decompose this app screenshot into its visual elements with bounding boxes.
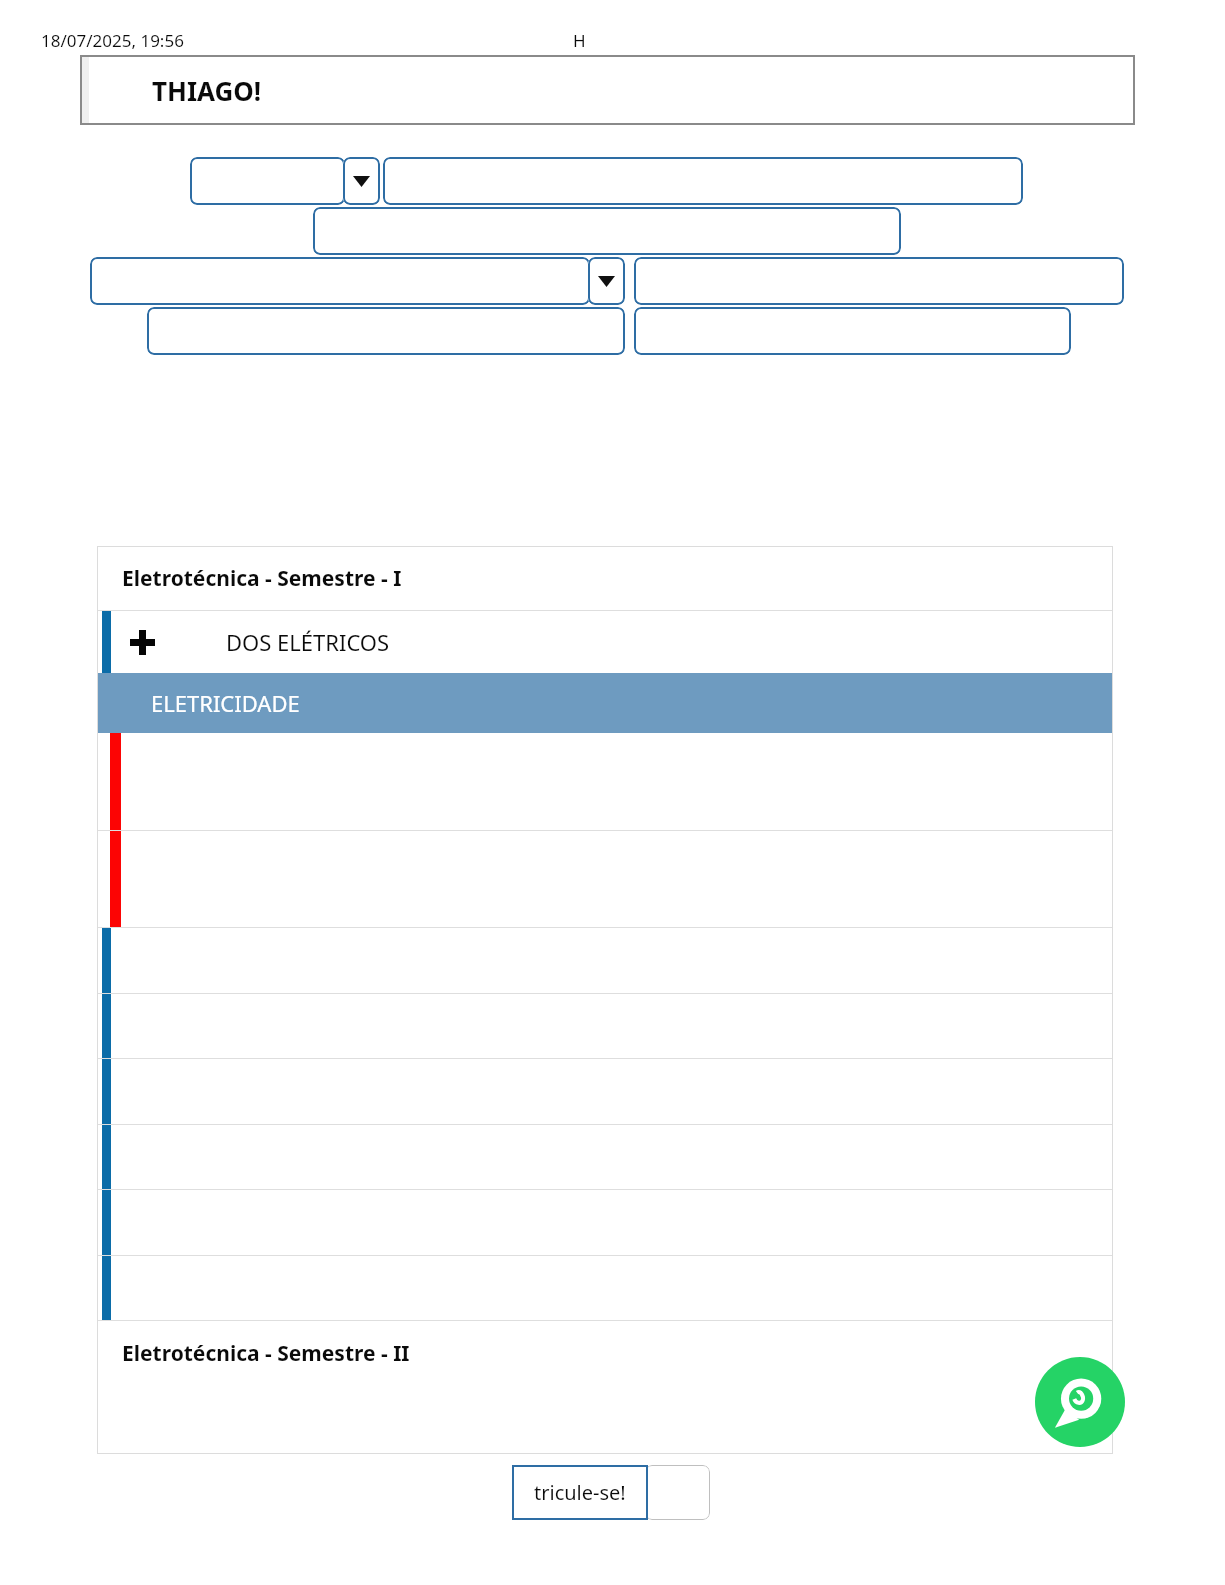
staticText: DOS ELÉTRICOS: [226, 627, 390, 657]
staticText: Eletrotécnica - Semestre - I: [122, 564, 402, 593]
button[interactable]: More options: [645, 1465, 710, 1520]
button[interactable]: [97, 831, 1113, 927]
button[interactable]: [97, 733, 1113, 830]
button[interactable]: Input field: [634, 307, 1071, 355]
button[interactable]: Eletrotécnica - Semestre - II: [97, 1321, 1113, 1385]
button[interactable]: WhatsApp: [1035, 1357, 1125, 1447]
button[interactable]: [97, 1125, 1113, 1189]
button[interactable]: THIAGO!: [80, 55, 1135, 125]
button[interactable]: ELETRICIDADE: [97, 673, 1113, 733]
button[interactable]: Input field: [147, 307, 625, 355]
staticText: tricule-se!: [534, 1479, 626, 1506]
staticText: THIAGO!: [152, 73, 262, 108]
button[interactable]: Input field: [313, 207, 901, 255]
button[interactable]: Dropdown: [190, 157, 380, 205]
staticText: 18/07/2025, 19:56: [41, 29, 184, 52]
button[interactable]: [97, 1059, 1113, 1124]
staticText: Eletrotécnica - Semestre - II: [122, 1339, 410, 1368]
button[interactable]: [97, 928, 1113, 993]
button[interactable]: Eletrotécnica - Semestre - I: [97, 546, 1113, 610]
button[interactable]: [97, 1190, 1113, 1255]
staticText: H: [573, 29, 586, 52]
button[interactable]: [97, 1256, 1113, 1320]
button[interactable]: Dropdown: [90, 257, 625, 305]
button[interactable]: Input field: [383, 157, 1023, 205]
button[interactable]: DOS ELÉTRICOS: [97, 611, 1113, 673]
button[interactable]: [97, 994, 1113, 1058]
staticText: ELETRICIDADE: [151, 688, 300, 718]
button[interactable]: tricule-se!: [512, 1465, 648, 1520]
button[interactable]: Input field: [634, 257, 1124, 305]
